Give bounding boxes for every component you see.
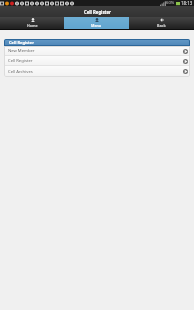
button[interactable]: Back	[129, 17, 194, 30]
staticText: Back	[157, 23, 166, 28]
button[interactable]: Cell Archives	[4, 66, 190, 77]
staticText: Menu	[91, 23, 102, 28]
staticText: Cell Register	[8, 58, 33, 64]
staticText: Cell Register	[84, 9, 111, 15]
staticText: Cell Archives	[8, 69, 33, 75]
staticText: 60%	[166, 0, 175, 6]
staticText: 18:13	[181, 0, 193, 6]
staticText: New Member	[8, 48, 35, 54]
button[interactable]: Cell Register	[4, 56, 190, 66]
staticText: Home	[27, 23, 38, 28]
staticText: Cell Register	[9, 40, 35, 45]
button[interactable]: New Member	[4, 46, 190, 56]
button[interactable]: Menu	[64, 17, 129, 30]
button[interactable]: Home	[0, 17, 64, 30]
